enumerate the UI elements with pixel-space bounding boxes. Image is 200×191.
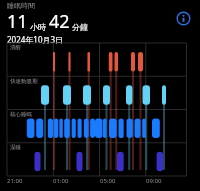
staticText: 清醒 xyxy=(10,44,21,51)
staticText: 快速動眼期 xyxy=(10,78,38,85)
staticText: 核心睡眠 xyxy=(10,111,32,118)
staticText: 01:00 xyxy=(53,177,69,185)
staticText: 小時 xyxy=(30,22,46,32)
staticText: 11 xyxy=(7,9,28,34)
staticText: 21:00 xyxy=(7,177,23,185)
button[interactable]: Info xyxy=(176,11,191,26)
staticText: 分鐘 xyxy=(72,22,88,32)
staticText: 09:00 xyxy=(146,177,162,185)
staticText: 42 xyxy=(49,9,70,34)
staticText: 深睡 xyxy=(10,144,21,151)
staticText: 2024年10月3日 xyxy=(7,34,64,45)
staticText: 睡眠時間 xyxy=(7,1,35,10)
staticText: 05:00 xyxy=(100,177,116,185)
